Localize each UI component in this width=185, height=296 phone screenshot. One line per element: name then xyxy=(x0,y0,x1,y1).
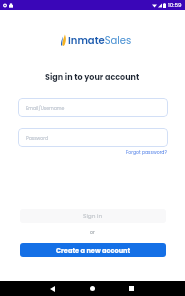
button[interactable]: Recent apps xyxy=(121,281,141,296)
button[interactable]: Password xyxy=(18,128,168,147)
staticText: Sign in xyxy=(83,212,103,220)
staticText: Forgot password? xyxy=(126,149,167,155)
staticText: Sign in to your account xyxy=(45,72,140,83)
button[interactable]: Forgot password? xyxy=(126,149,167,155)
button[interactable]: Home xyxy=(82,281,102,296)
staticText: Email/Username xyxy=(26,105,65,111)
staticText: or xyxy=(90,229,95,235)
button[interactable]: Sign in xyxy=(20,209,166,223)
button[interactable]: Back xyxy=(42,281,62,296)
staticText: Password xyxy=(26,135,49,141)
button[interactable]: Create a new account xyxy=(20,243,166,257)
button[interactable]: Email/Username xyxy=(18,98,168,117)
staticText: 10:59 xyxy=(168,1,182,9)
staticText: InmateSales xyxy=(68,33,132,47)
staticText: Create a new account xyxy=(56,246,131,255)
